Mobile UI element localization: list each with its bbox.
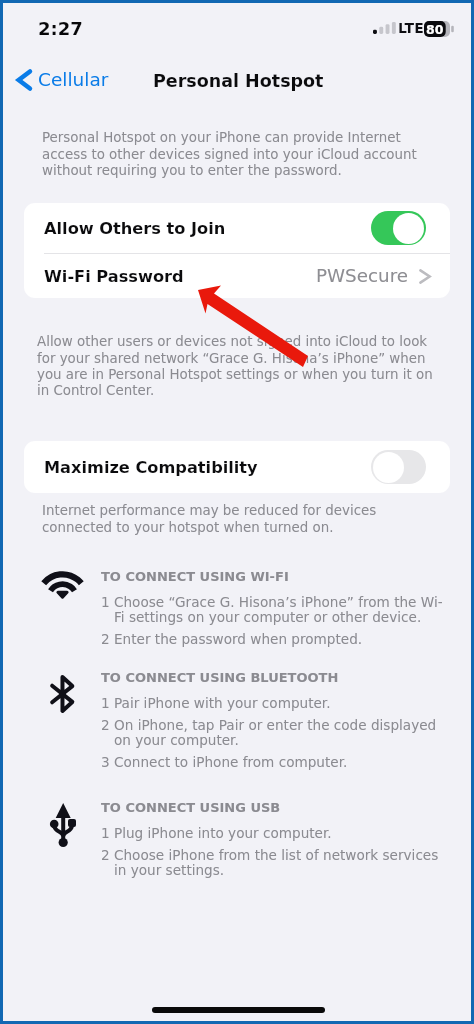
staticText: 2:27	[38, 18, 83, 39]
staticText: 2	[101, 631, 114, 647]
staticText: 1	[101, 594, 114, 610]
button[interactable]: Toggle on	[371, 211, 426, 245]
staticText: Wi-Fi Password	[44, 267, 184, 286]
staticText: Internet performance may be reduced for …	[42, 503, 392, 535]
staticText: Pair iPhone with your computer.	[114, 695, 331, 711]
staticText: Allow other users or devices not signed …	[37, 334, 443, 398]
staticText: Personal Hotspot	[153, 71, 324, 91]
staticText: TO CONNECT USING BLUETOOTH	[101, 670, 339, 685]
staticText: Plug iPhone into your computer.	[114, 825, 332, 841]
staticText: Cellular	[38, 69, 109, 91]
staticText: TO CONNECT USING USB	[101, 800, 281, 815]
staticText: PWSecure	[316, 265, 409, 286]
staticText: Maximize Compatibility	[44, 458, 258, 477]
button[interactable]: Maximize Compatibility	[24, 441, 450, 493]
button[interactable]: Toggle off	[371, 450, 426, 484]
button[interactable]: Wi-Fi Password	[24, 254, 450, 298]
staticText: 2	[101, 717, 114, 733]
staticText: Allow Others to Join	[44, 219, 226, 238]
staticText: Enter the password when prompted.	[114, 631, 363, 647]
staticText: Connect to iPhone from computer.	[114, 754, 348, 770]
staticText: 1	[101, 825, 114, 841]
button[interactable]: Cellular	[16, 69, 117, 91]
staticText: 2	[101, 847, 114, 863]
staticText: On iPhone, tap Pair or enter the code di…	[114, 717, 445, 748]
staticText: Choose “Grace G. Hisona’s iPhone” from t…	[114, 594, 445, 625]
staticText: TO CONNECT USING WI-FI	[101, 569, 289, 584]
staticText: Personal Hotspot on your iPhone can prov…	[42, 130, 422, 178]
staticText: 3	[101, 754, 114, 770]
button[interactable]: Allow Others to Join	[24, 203, 450, 253]
staticText: LTE	[398, 20, 424, 36]
staticText: Choose iPhone from the list of network s…	[114, 847, 445, 878]
staticText: 80	[426, 22, 444, 37]
staticText: 1	[101, 695, 114, 711]
